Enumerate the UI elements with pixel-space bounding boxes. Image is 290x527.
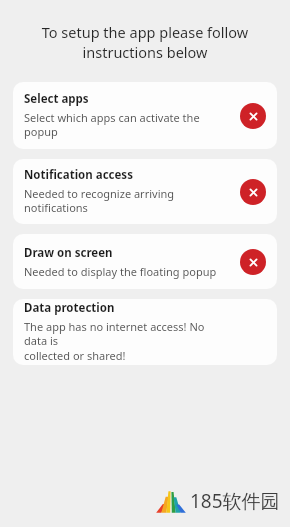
- staticText: Needed to recognize arriving notificatio…: [24, 186, 175, 216]
- button[interactable]: Notification access: [13, 159, 277, 224]
- staticText: The app has no internet access! No data …: [24, 319, 221, 364]
- button[interactable]: Not granted: Draw on screen: [240, 249, 266, 275]
- staticText: Draw on screen: [24, 245, 113, 261]
- button[interactable]: Data protection: [13, 299, 277, 365]
- staticText: Needed to display the floating popup: [24, 264, 217, 279]
- button[interactable]: Not granted: Notification access: [240, 179, 266, 205]
- staticText: 185软件园: [190, 488, 280, 514]
- button[interactable]: Draw on screen: [13, 234, 277, 289]
- staticText: Select apps: [24, 91, 89, 107]
- button[interactable]: Select apps: [13, 82, 277, 149]
- staticText: To setup the app please follow instructi…: [18, 22, 272, 62]
- button[interactable]: Not granted: Select apps: [240, 103, 266, 129]
- staticText: Notification access: [24, 167, 133, 183]
- staticText: Select which apps can activate the popup: [24, 110, 200, 140]
- staticText: Data protection: [24, 300, 115, 316]
